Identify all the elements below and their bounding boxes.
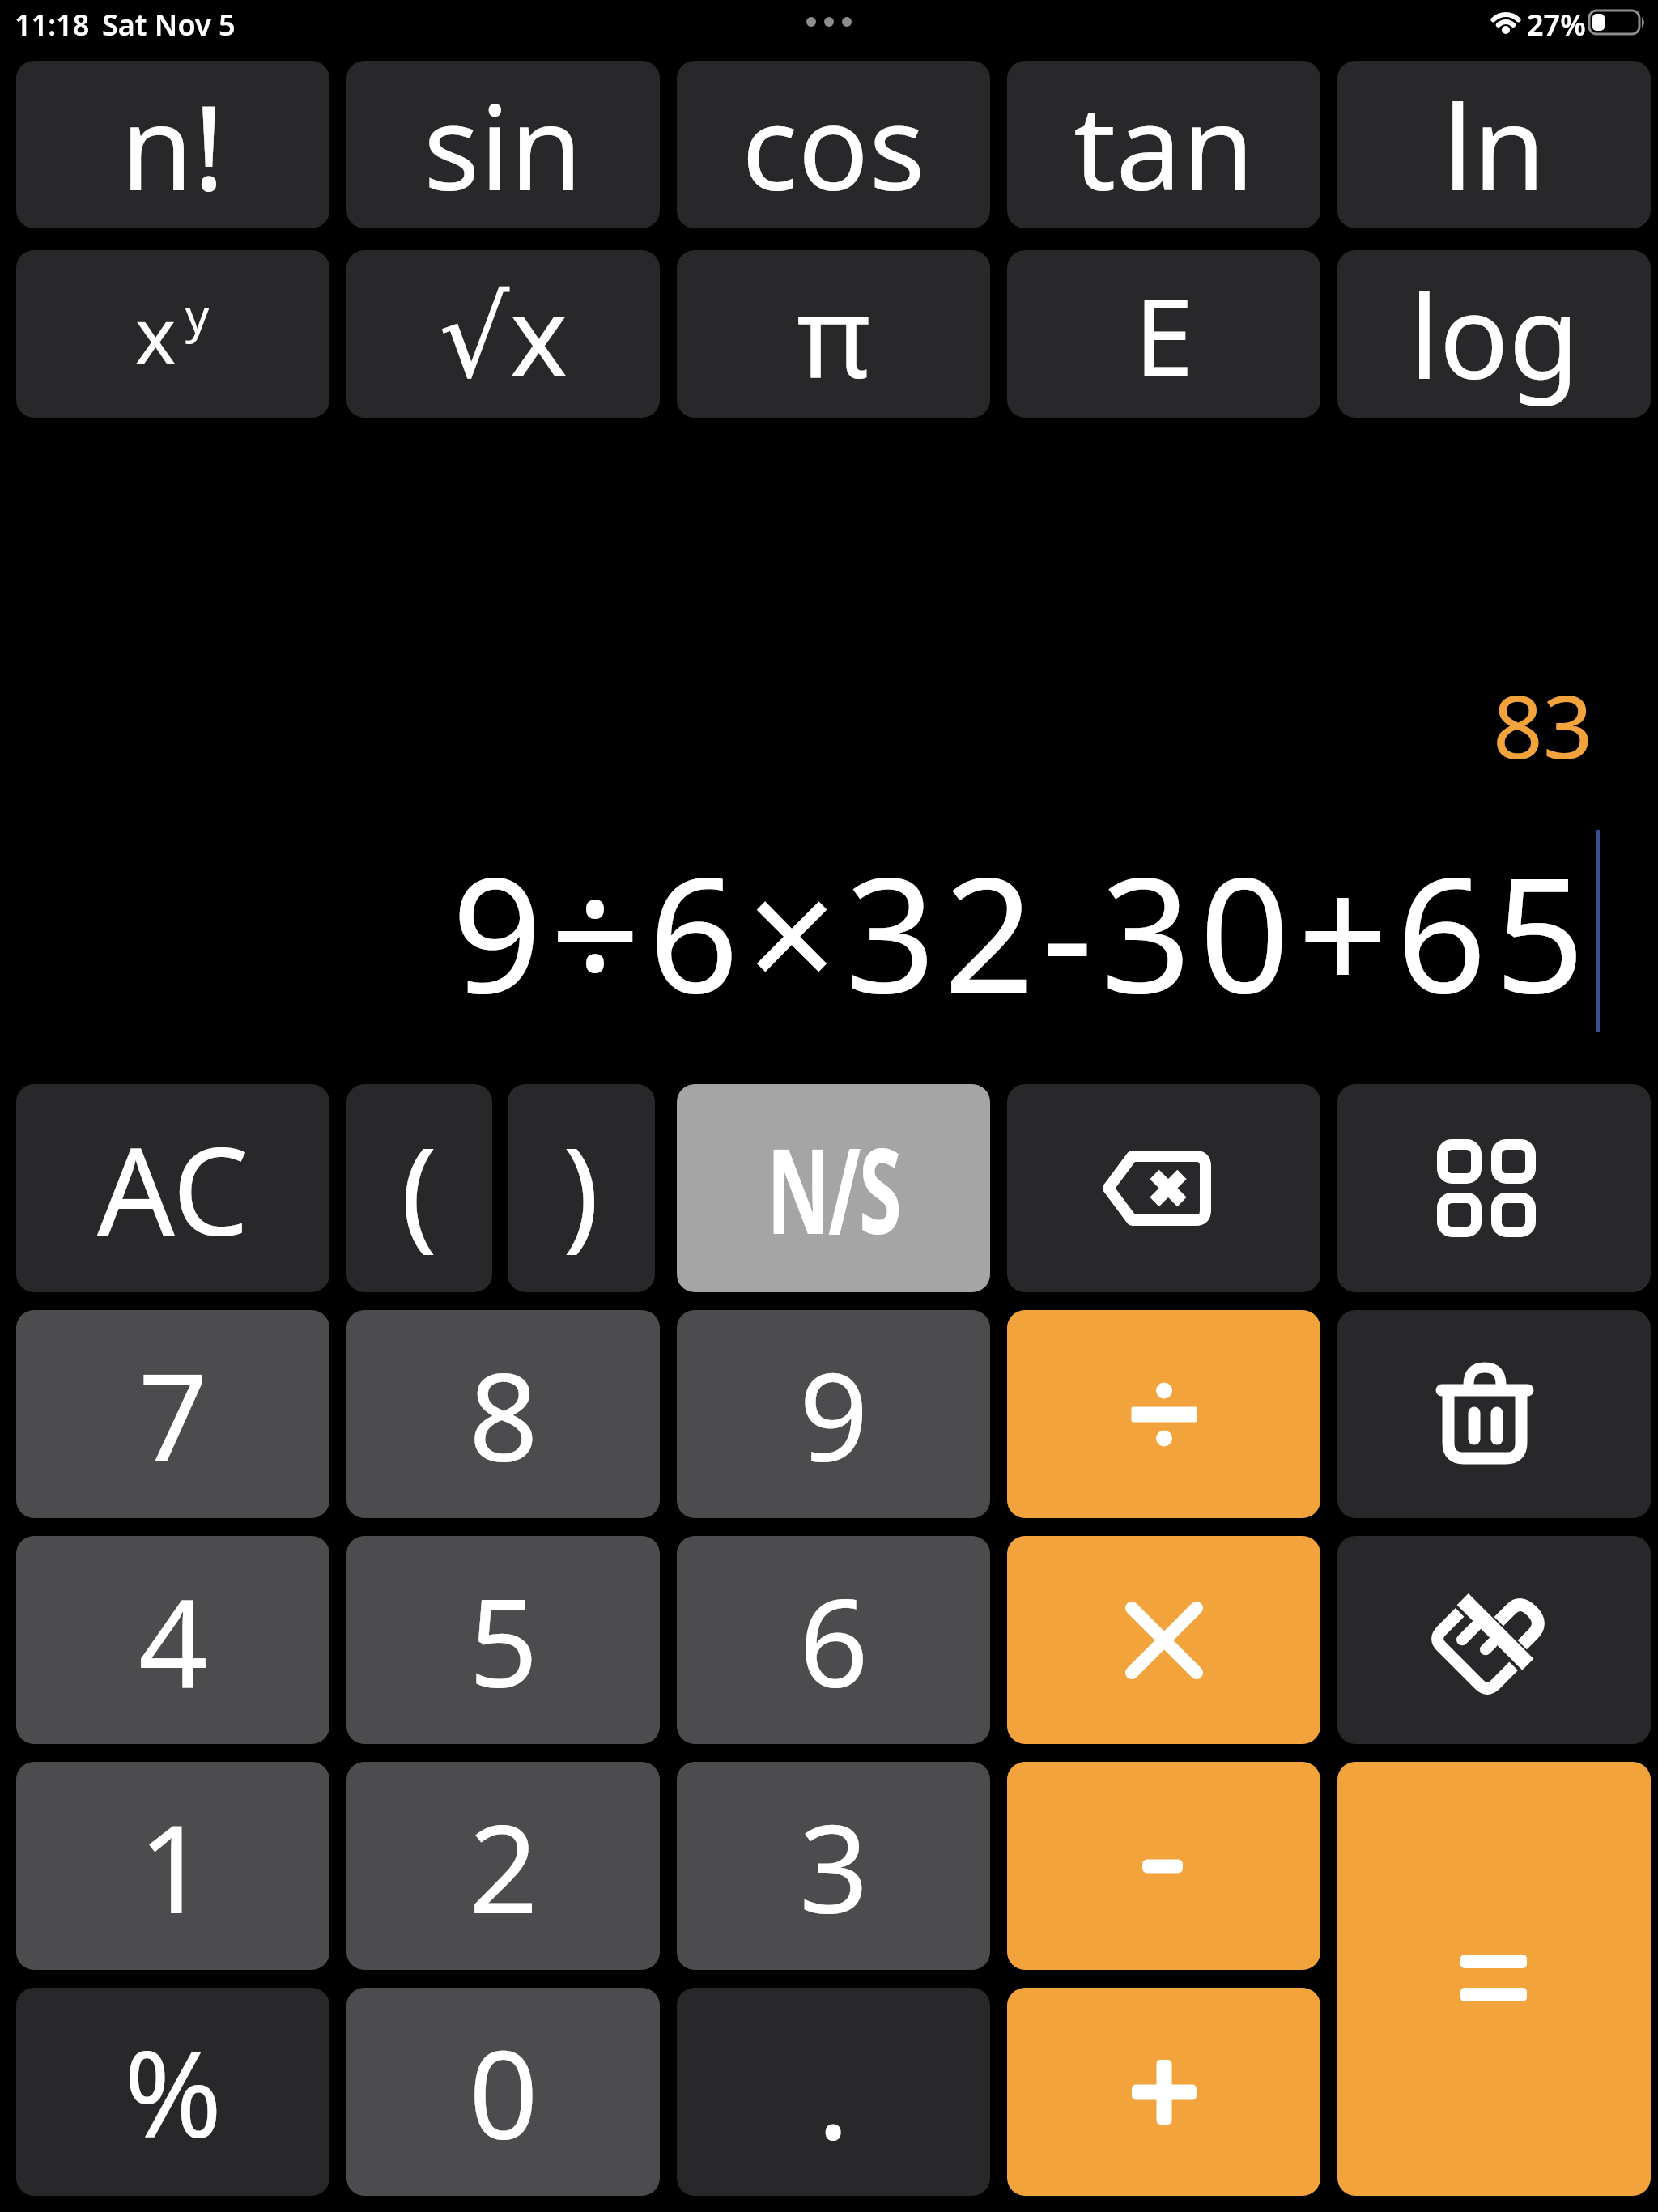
staticText: . [817,2010,850,2175]
staticText: N/S [767,1108,900,1268]
staticText: % [124,2011,223,2172]
staticText: AC [97,1106,249,1271]
staticText: x [135,281,176,385]
staticText: 9÷6×32-30+65 [452,824,1593,1010]
staticText: π [797,257,871,411]
staticText: ( [401,1106,438,1271]
button[interactable] [1337,1762,1651,2196]
staticText: 11:18 [15,5,90,45]
button[interactable]: % [16,1988,329,2196]
button[interactable] [1007,1536,1320,1744]
button[interactable]: N/S [677,1084,990,1292]
button[interactable]: 3 [677,1762,990,1970]
button[interactable] [1337,1084,1651,1292]
staticText: n! [121,65,225,224]
button[interactable]: ln [1337,61,1651,228]
button[interactable] [1007,1762,1320,1970]
staticText: ) [563,1106,600,1271]
button[interactable]: 6 [677,1536,990,1744]
button[interactable]: 9 [677,1310,990,1518]
staticText: 4 [138,1558,208,1723]
staticText: E [1134,262,1194,407]
button[interactable]: n! [16,61,329,228]
button[interactable]: √x [346,250,660,418]
staticText: √x [439,258,568,410]
button[interactable]: . [677,1988,990,2196]
button[interactable]: AC [16,1084,329,1292]
button[interactable]: ) [508,1084,655,1292]
button[interactable]: 7 [16,1310,329,1518]
button[interactable]: 8 [346,1310,660,1518]
staticText: 8 [469,1332,538,1497]
button[interactable]: tan [1007,61,1320,228]
button[interactable]: 0 [346,1988,660,2196]
staticText: cos [742,65,925,224]
button[interactable]: log [1337,250,1651,418]
button[interactable]: 4 [16,1536,329,1744]
staticText: 83 [1493,666,1593,785]
staticText: ln [1443,65,1546,224]
button[interactable]: x [16,250,329,418]
button[interactable] [1007,1084,1320,1292]
button[interactable]: 1 [16,1762,329,1970]
button[interactable] [1007,1310,1320,1518]
button[interactable]: ( [346,1084,492,1292]
button[interactable]: π [677,250,990,418]
staticText: log [1409,256,1579,412]
staticText: 2 [469,1784,538,1949]
button[interactable]: 2 [346,1762,660,1970]
button[interactable]: cos [677,61,990,228]
button[interactable] [1337,1310,1651,1518]
button[interactable]: 5 [346,1536,660,1744]
staticText: sin [423,65,583,224]
staticText: 6 [799,1558,869,1723]
staticText: 9 [799,1332,869,1497]
staticText: 1 [138,1784,208,1949]
button[interactable]: sin [346,61,660,228]
staticText: 0 [469,2010,538,2175]
staticText: y [185,283,210,347]
staticText: 3 [799,1784,869,1949]
staticText: 27% [1527,5,1586,45]
staticText: Sat Nov 5 [102,5,236,45]
staticText: tan [1073,65,1255,224]
button[interactable]: E [1007,250,1320,418]
button[interactable] [1007,1988,1320,2196]
button[interactable] [1337,1536,1651,1744]
staticText: 7 [138,1332,208,1497]
staticText: 5 [469,1558,538,1723]
